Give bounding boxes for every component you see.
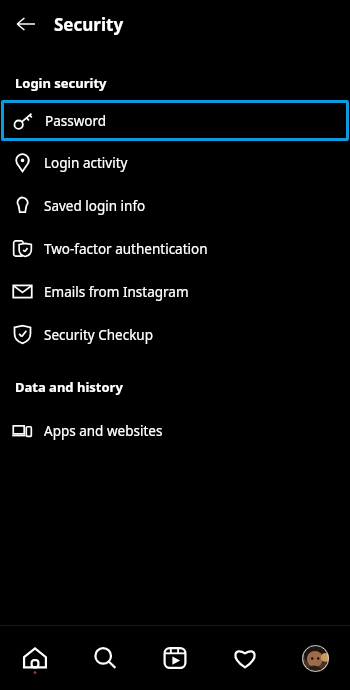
button[interactable]: Security Checkup [0,313,350,356]
staticText: Login activity [44,154,128,172]
staticText: Saved login info [44,197,146,215]
staticText: Password [45,112,107,130]
button[interactable]: Emails from Instagram [0,270,350,313]
staticText: Emails from Instagram [44,283,189,301]
button[interactable]: Two-factor authentication [0,227,350,270]
button[interactable]: Apps and websites [0,409,350,452]
button[interactable]: Password [1,100,349,141]
staticText: Apps and websites [44,422,163,440]
staticText: Data and history [15,378,123,396]
button[interactable]: Saved login info [0,184,350,227]
staticText: Two-factor authentication [44,240,208,258]
staticText: Security [54,13,124,36]
staticText: Login security [15,74,107,92]
button[interactable]: Home [0,626,70,690]
button[interactable]: Login activity [0,141,350,184]
button[interactable]: Search [70,626,140,690]
button[interactable]: Back [8,6,44,42]
button[interactable]: Activity [210,626,280,690]
button[interactable]: Profile [280,626,350,690]
staticText: Security Checkup [44,326,153,344]
button[interactable]: Reels [140,626,210,690]
